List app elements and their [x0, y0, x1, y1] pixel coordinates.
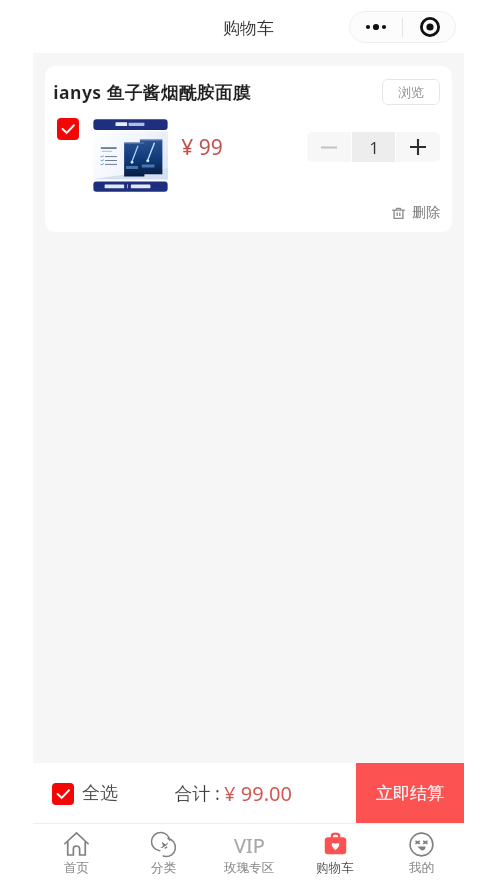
button[interactable]: Decrease quantity — [307, 132, 351, 162]
button[interactable]: Select all — [52, 782, 118, 805]
staticText: 首页 — [64, 860, 89, 876]
staticText: ianys 鱼子酱烟酰胺面膜 — [53, 80, 251, 104]
button[interactable]: Item selected — [57, 118, 79, 140]
button[interactable]: 分类 — [120, 824, 206, 883]
button[interactable]: ianys 鱼子酱烟酰胺面膜 — [45, 66, 452, 232]
button[interactable]: Close mini program — [403, 11, 456, 43]
staticText: 浏览 — [398, 84, 424, 100]
button[interactable]: 我的 — [378, 824, 464, 883]
staticText: ¥ 99.00 — [224, 780, 292, 807]
button[interactable]: Select all — [52, 783, 74, 805]
staticText: 全选 — [82, 782, 118, 805]
staticText: 1 — [369, 136, 379, 159]
button[interactable]: VIP — [206, 824, 292, 883]
button[interactable]: 首页 — [33, 824, 120, 883]
staticText: 删除 — [412, 204, 440, 222]
staticText: 我的 — [409, 860, 434, 876]
staticText: 购物车 — [316, 860, 354, 876]
staticText: 立即结算 — [376, 783, 444, 804]
staticText: 玫瑰专区 — [224, 860, 274, 876]
staticText: VIP — [234, 832, 265, 857]
button[interactable]: 删除 — [386, 202, 446, 224]
button[interactable]: More options — [349, 11, 402, 43]
button[interactable]: 立即结算 — [356, 763, 464, 823]
staticText: 合计 : — [174, 781, 220, 806]
staticText: 分类 — [151, 860, 176, 876]
button[interactable]: 购物车 — [292, 824, 378, 883]
button[interactable]: Increase quantity — [396, 132, 440, 162]
staticText: ¥ 99 — [181, 133, 223, 162]
button[interactable]: 浏览 — [382, 79, 440, 105]
staticText: 购物车 — [223, 18, 274, 39]
